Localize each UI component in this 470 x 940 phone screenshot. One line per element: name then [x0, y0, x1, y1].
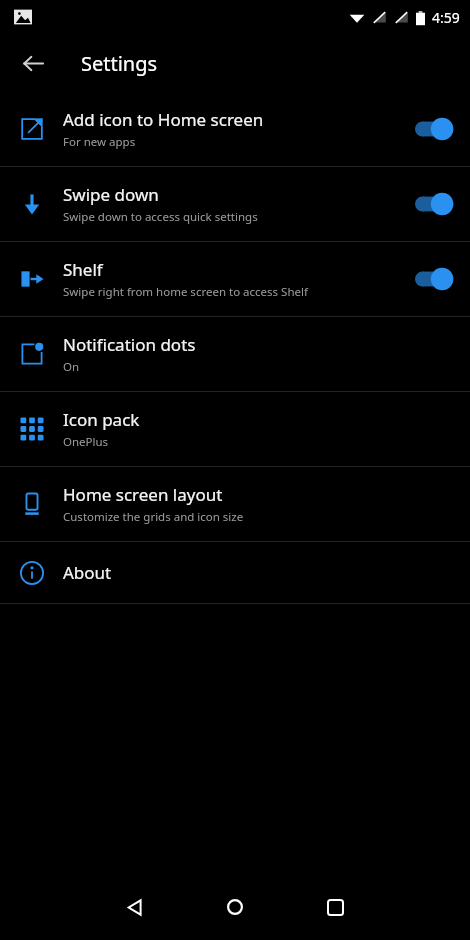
- button[interactable]: Home: [185, 882, 285, 932]
- staticText: About: [63, 561, 112, 584]
- button[interactable]: Back: [85, 882, 185, 932]
- button[interactable]: Icon pack: [0, 392, 470, 466]
- staticText: On: [63, 359, 80, 375]
- staticText: Swipe right from home screen to access S…: [63, 284, 308, 300]
- button[interactable]: About: [0, 542, 470, 603]
- staticText: Settings: [81, 50, 158, 77]
- button[interactable]: [404, 182, 470, 226]
- button[interactable]: Notification dots: [0, 317, 470, 391]
- button[interactable]: Recent apps: [285, 882, 385, 932]
- button[interactable]: Home screen layout: [0, 467, 470, 541]
- button[interactable]: Swipe down: [0, 167, 470, 241]
- staticText: Add icon to Home screen: [63, 108, 264, 131]
- staticText: Icon pack: [63, 408, 140, 431]
- staticText: OnePlus: [63, 434, 109, 450]
- button[interactable]: [404, 257, 470, 301]
- staticText: Swipe down to access quick settings: [63, 209, 258, 225]
- button[interactable]: Add icon to Home screen: [0, 92, 470, 166]
- staticText: Customize the grids and icon size: [63, 509, 244, 525]
- staticText: Notification dots: [63, 333, 196, 356]
- staticText: 4:59: [432, 8, 460, 27]
- button[interactable]: Shelf: [0, 242, 470, 316]
- staticText: Shelf: [63, 258, 103, 281]
- staticText: Swipe down: [63, 183, 159, 206]
- staticText: For new apps: [63, 134, 136, 150]
- button[interactable]: Back: [14, 44, 52, 82]
- staticText: Home screen layout: [63, 483, 223, 506]
- button[interactable]: [404, 107, 470, 151]
